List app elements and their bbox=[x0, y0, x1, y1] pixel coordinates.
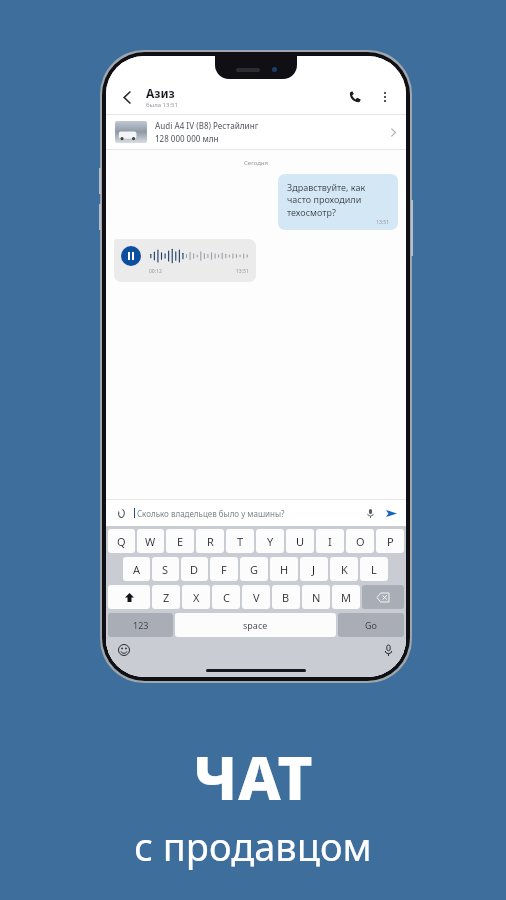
button[interactable]: Voice input bbox=[363, 506, 377, 520]
staticText: 13:51 bbox=[287, 219, 389, 226]
staticText: V bbox=[253, 590, 260, 605]
staticText: T bbox=[237, 534, 244, 549]
staticText: B bbox=[282, 590, 290, 605]
button[interactable]: G bbox=[240, 557, 268, 581]
staticText: Азиз bbox=[146, 85, 175, 101]
staticText: Go bbox=[365, 619, 377, 631]
staticText: была 13:51 bbox=[146, 101, 178, 109]
staticText: A bbox=[133, 562, 141, 577]
button[interactable]: T bbox=[226, 529, 254, 553]
button[interactable]: R bbox=[196, 529, 224, 553]
button[interactable]: Shift bbox=[108, 585, 150, 609]
button[interactable]: Attach bbox=[106, 500, 406, 526]
staticText: I bbox=[328, 534, 332, 549]
button[interactable]: K bbox=[330, 557, 358, 581]
staticText: Y bbox=[267, 534, 274, 549]
staticText: J bbox=[312, 562, 316, 577]
staticText: W bbox=[145, 534, 156, 549]
staticText: H bbox=[280, 562, 289, 577]
button[interactable]: B bbox=[272, 585, 300, 609]
button[interactable]: D bbox=[181, 557, 208, 581]
button[interactable]: Z bbox=[152, 585, 180, 609]
button[interactable]: S bbox=[152, 557, 179, 581]
button[interactable]: U bbox=[286, 529, 314, 553]
button[interactable]: Back bbox=[116, 86, 138, 108]
button[interactable]: F bbox=[210, 557, 238, 581]
button[interactable]: Здравствуйте, как часто проходили техосм… bbox=[278, 174, 398, 230]
button[interactable]: Back bbox=[106, 80, 406, 114]
staticText: 123 bbox=[133, 619, 149, 631]
staticText: K bbox=[341, 562, 348, 577]
button[interactable]: Send bbox=[384, 506, 398, 520]
staticText: U bbox=[296, 534, 305, 549]
staticText: ЧАТ bbox=[193, 736, 314, 818]
button[interactable]: V bbox=[242, 585, 270, 609]
staticText: D bbox=[190, 562, 199, 577]
staticText: space bbox=[243, 619, 268, 631]
staticText: 128 000 000 млн bbox=[155, 133, 219, 144]
staticText: R bbox=[207, 534, 214, 549]
button[interactable]: 123 bbox=[108, 613, 173, 637]
staticText: с продавцом bbox=[134, 820, 372, 872]
staticText: F bbox=[221, 562, 227, 577]
button[interactable]: Go bbox=[338, 613, 404, 637]
staticText: Q bbox=[117, 534, 126, 549]
button[interactable]: space bbox=[175, 613, 336, 637]
button[interactable]: E bbox=[166, 529, 194, 553]
staticText: Здравствуйте, как часто проходили техосм… bbox=[287, 181, 389, 219]
button[interactable]: C bbox=[212, 585, 240, 609]
staticText: 13:51 bbox=[236, 268, 249, 275]
button[interactable]: H bbox=[270, 557, 298, 581]
button[interactable]: Play voice message bbox=[121, 246, 141, 266]
button[interactable]: Emoji bbox=[116, 642, 132, 658]
staticText: Audi A4 IV (B8) Рестайлинг bbox=[155, 120, 259, 131]
staticText: L bbox=[371, 562, 377, 577]
staticText: Сколько владельцев было у машины? bbox=[137, 508, 363, 519]
button[interactable]: Y bbox=[256, 529, 284, 553]
button[interactable]: More options bbox=[374, 86, 396, 108]
staticText: M bbox=[341, 590, 351, 605]
button[interactable]: Backspace bbox=[362, 585, 404, 609]
button[interactable]: N bbox=[302, 585, 330, 609]
staticText: N bbox=[312, 590, 321, 605]
button[interactable]: Audi A4 IV (B8) Рестайлинг bbox=[106, 115, 406, 149]
staticText: Сегодня bbox=[244, 159, 269, 167]
button[interactable]: Call bbox=[344, 86, 366, 108]
button[interactable]: L bbox=[360, 557, 388, 581]
staticText: P bbox=[387, 534, 394, 549]
button[interactable]: I bbox=[316, 529, 344, 553]
button[interactable]: Q bbox=[108, 529, 135, 553]
button[interactable]: Attach bbox=[114, 506, 128, 520]
button[interactable]: X bbox=[182, 585, 210, 609]
button[interactable]: O bbox=[346, 529, 374, 553]
staticText: O bbox=[356, 534, 365, 549]
staticText: X bbox=[193, 590, 200, 605]
staticText: E bbox=[177, 534, 184, 549]
button[interactable]: J bbox=[300, 557, 328, 581]
staticText: G bbox=[250, 562, 259, 577]
staticText: 00:12 bbox=[149, 268, 162, 275]
button[interactable]: W bbox=[137, 529, 164, 553]
button[interactable]: M bbox=[332, 585, 360, 609]
staticText: S bbox=[162, 562, 169, 577]
staticText: Z bbox=[163, 590, 170, 605]
button[interactable]: Play voice message bbox=[114, 239, 256, 282]
button[interactable]: Dictate bbox=[380, 642, 396, 658]
button[interactable]: P bbox=[376, 529, 404, 553]
button[interactable]: A bbox=[123, 557, 150, 581]
staticText: C bbox=[223, 590, 230, 605]
